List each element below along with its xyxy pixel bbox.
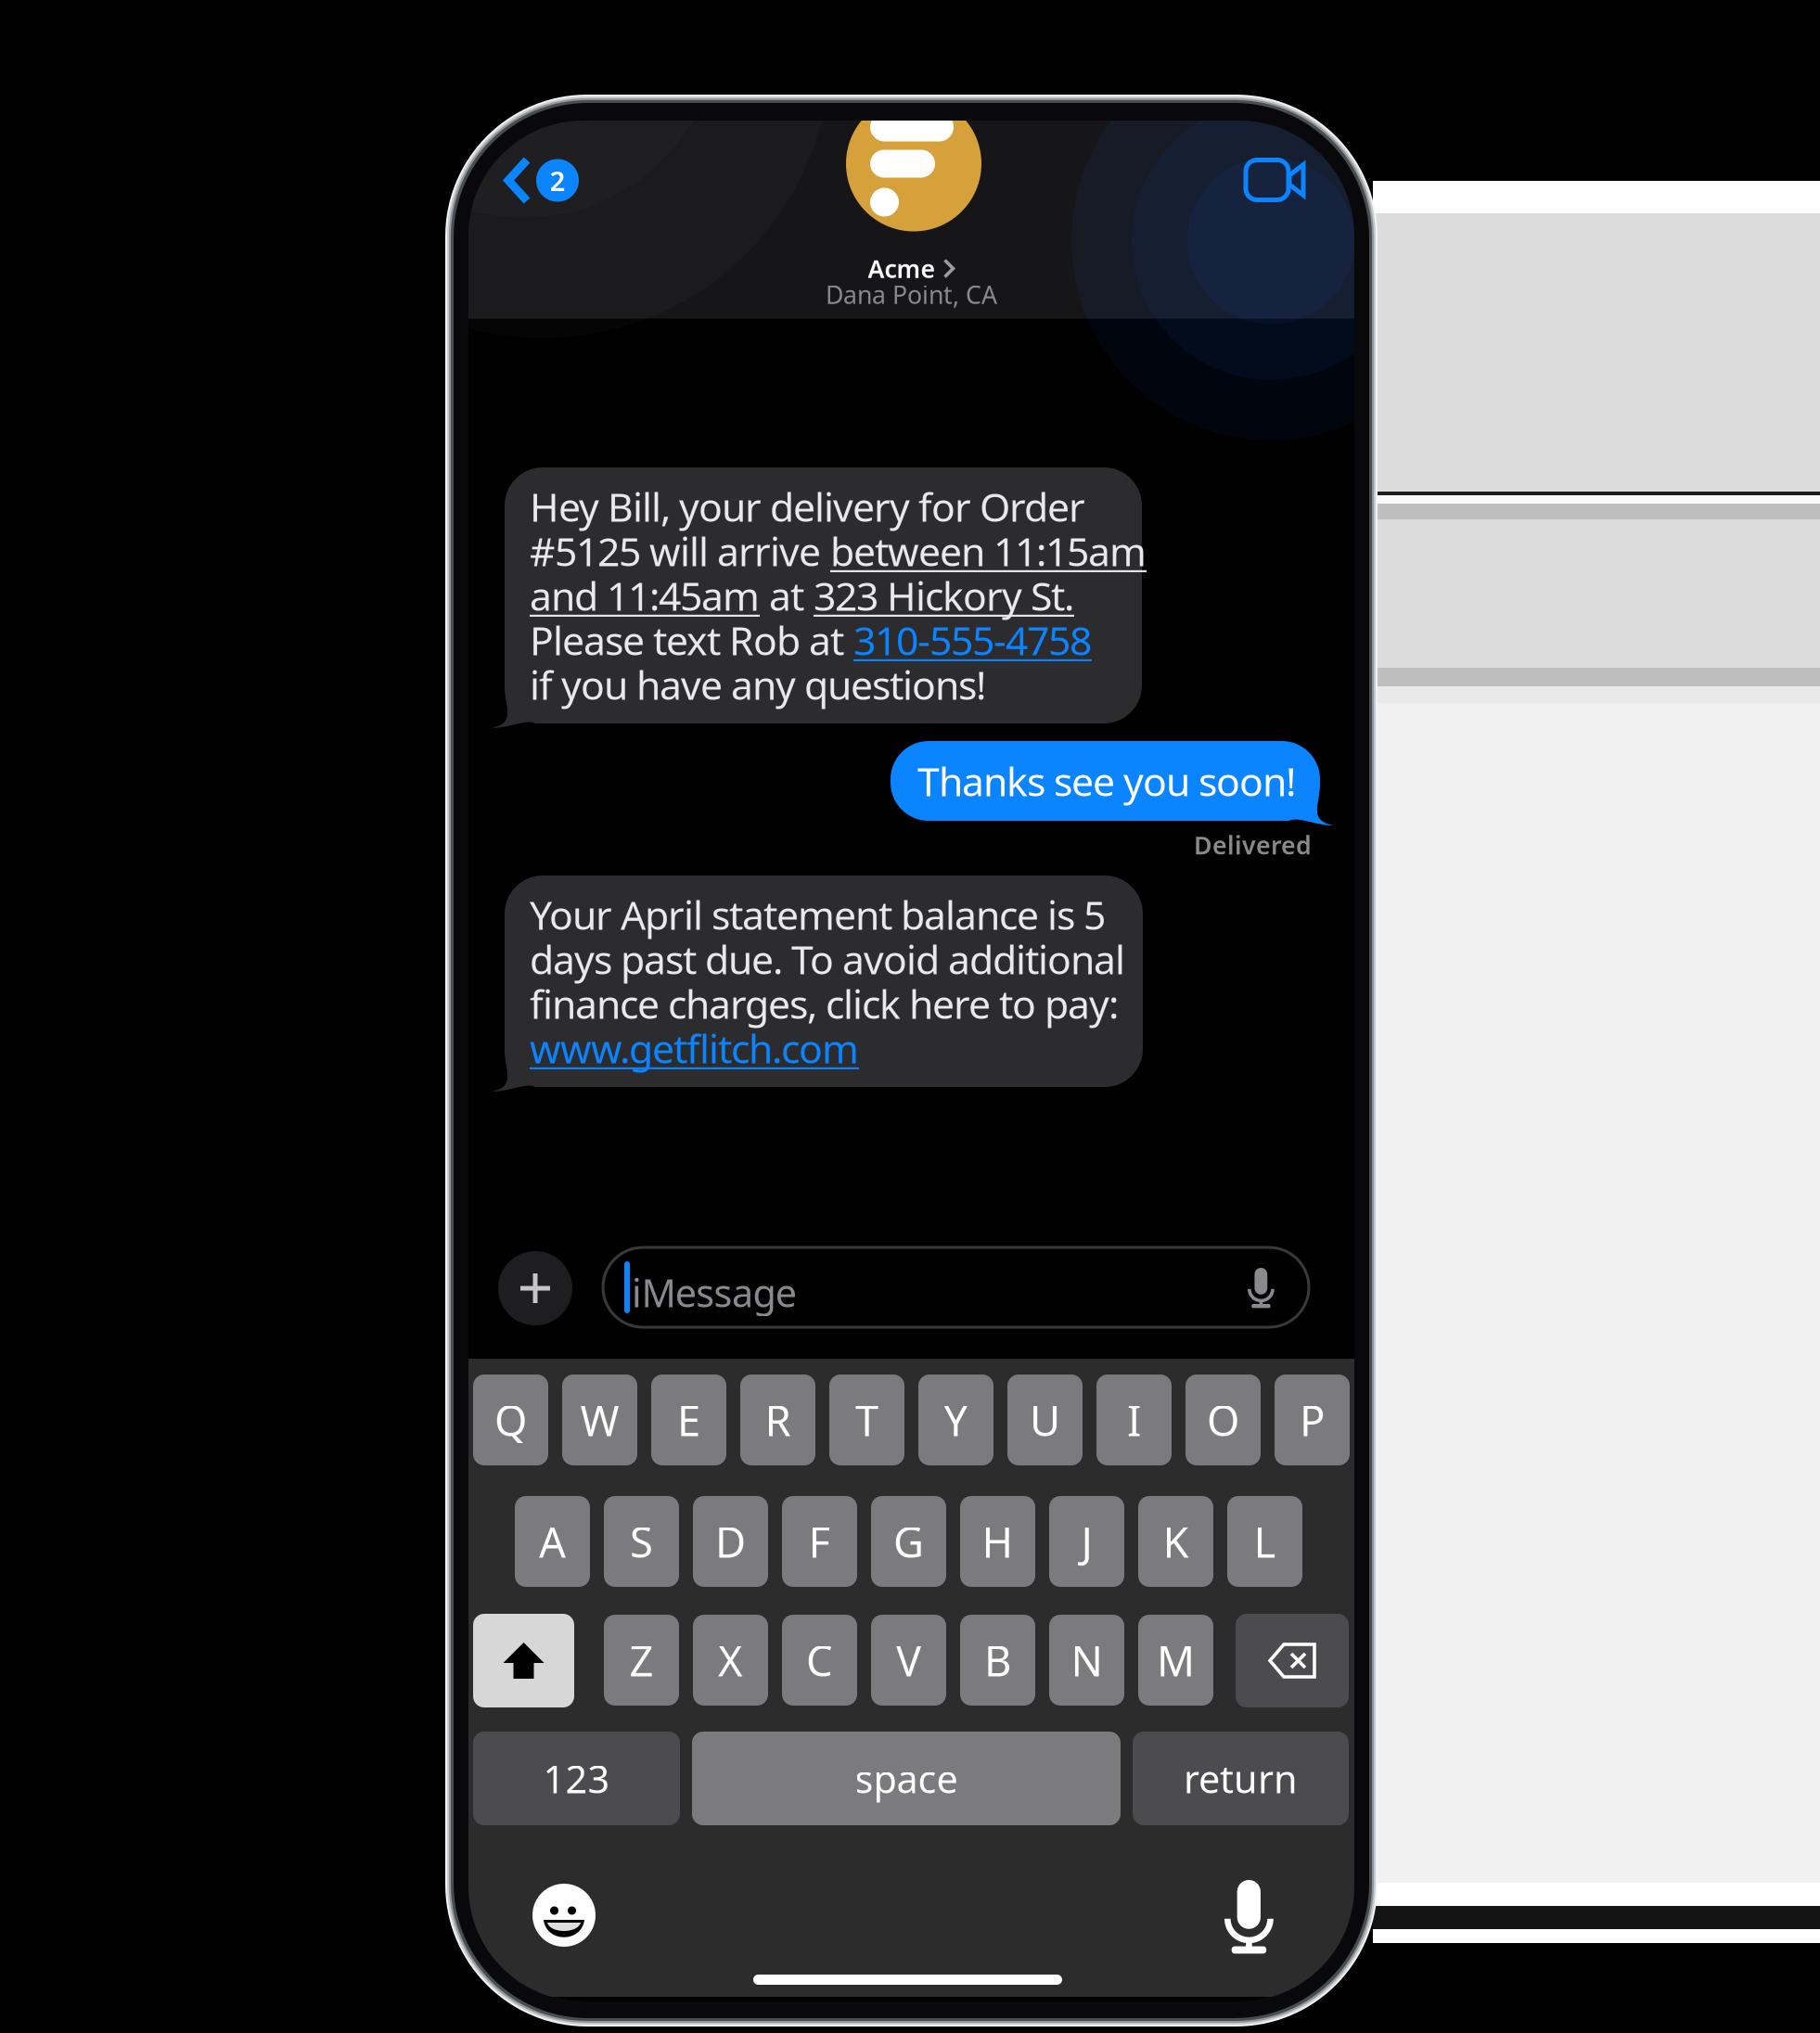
button[interactable]: G xyxy=(871,1496,946,1587)
button[interactable]: Delete xyxy=(1236,1614,1349,1707)
button[interactable]: T xyxy=(829,1375,904,1465)
button[interactable]: I xyxy=(1096,1375,1172,1465)
button[interactable]: Z xyxy=(604,1615,679,1706)
button[interactable]: Shift xyxy=(473,1614,574,1707)
staticText: A xyxy=(539,1514,566,1569)
button[interactable]: Back to conversations xyxy=(504,156,582,205)
button[interactable]: R xyxy=(740,1375,815,1465)
button[interactable]: B xyxy=(960,1615,1035,1706)
staticText: V xyxy=(896,1632,921,1688)
staticText: space xyxy=(855,1753,958,1804)
staticText: iMessage xyxy=(632,1267,797,1318)
staticText: O xyxy=(1207,1392,1239,1448)
staticText: E xyxy=(677,1392,700,1448)
button[interactable]: space xyxy=(692,1732,1121,1825)
staticText: Dana Point, CA xyxy=(826,278,997,311)
staticText: H xyxy=(982,1514,1013,1569)
staticText: Hey Bill, your delivery for Order xyxy=(530,480,1085,533)
button[interactable]: Q xyxy=(473,1375,548,1465)
button[interactable]: H xyxy=(960,1496,1035,1587)
button[interactable]: W xyxy=(562,1375,637,1465)
button[interactable]: M xyxy=(1138,1615,1213,1706)
button[interactable]: F xyxy=(782,1496,857,1587)
staticText: Y xyxy=(944,1392,968,1448)
staticText: I xyxy=(1127,1392,1141,1448)
button[interactable]: Acme contact details xyxy=(468,252,1354,285)
button[interactable]: N xyxy=(1049,1615,1124,1706)
button[interactable]: Message text field xyxy=(603,1247,1309,1327)
button[interactable]: L xyxy=(1227,1496,1302,1587)
button[interactable]: 123 xyxy=(473,1732,680,1825)
staticText: L xyxy=(1254,1514,1276,1569)
staticText: P xyxy=(1300,1392,1325,1448)
button[interactable]: O xyxy=(1186,1375,1261,1465)
staticText: C xyxy=(806,1632,833,1688)
button[interactable]: Acme profile photo xyxy=(846,96,981,231)
button[interactable]: Emoji keyboard xyxy=(532,1884,596,1947)
staticText: U xyxy=(1030,1392,1060,1448)
staticText: G xyxy=(893,1514,924,1569)
staticText: Acme xyxy=(868,252,936,285)
button[interactable]: V xyxy=(871,1615,946,1706)
staticText: return xyxy=(1184,1753,1298,1804)
staticText: M xyxy=(1157,1632,1195,1688)
button[interactable]: A xyxy=(515,1496,590,1587)
staticText: Z xyxy=(629,1632,654,1688)
staticText: 123 xyxy=(543,1753,610,1804)
staticText: D xyxy=(715,1514,746,1569)
staticText: days past due. To avoid additional xyxy=(530,933,1125,985)
staticText: www.getflitch.com xyxy=(530,1022,859,1074)
staticText: W xyxy=(580,1392,619,1448)
button[interactable]: P xyxy=(1275,1375,1350,1465)
staticText: Please text Rob at xyxy=(530,614,853,666)
staticText: finance charges, click here to pay: xyxy=(530,977,1119,1030)
staticText: if you have any questions! xyxy=(530,658,986,711)
staticText: Thanks see you soon! xyxy=(917,755,1296,807)
button[interactable]: Dictation xyxy=(1224,1880,1273,1954)
staticText: 323 Hickory St. xyxy=(814,569,1074,622)
staticText: N xyxy=(1071,1632,1102,1688)
button[interactable]: S xyxy=(604,1496,679,1587)
button[interactable]: FaceTime xyxy=(1246,160,1306,200)
staticText: R xyxy=(765,1392,791,1448)
button[interactable]: X xyxy=(693,1615,768,1706)
staticText: at xyxy=(760,569,814,622)
staticText: 310-555-4758 xyxy=(853,614,1092,666)
button[interactable]: C xyxy=(782,1615,857,1706)
staticText: S xyxy=(630,1514,653,1569)
button[interactable]: Add attachment xyxy=(498,1251,572,1325)
staticText: #5125 will arrive xyxy=(530,525,830,577)
staticText: F xyxy=(808,1514,831,1569)
button[interactable]: J xyxy=(1049,1496,1124,1587)
staticText: B xyxy=(984,1632,1011,1688)
button[interactable]: return xyxy=(1133,1732,1349,1825)
staticText: between 11:15am xyxy=(830,525,1147,577)
staticText: X xyxy=(718,1632,743,1688)
staticText: and 11:45am xyxy=(530,569,760,622)
staticText: Your April statement balance is 5 xyxy=(530,888,1106,941)
button[interactable]: Y xyxy=(918,1375,993,1465)
button[interactable]: U xyxy=(1007,1375,1083,1465)
staticText: K xyxy=(1163,1514,1189,1569)
button[interactable]: E xyxy=(651,1375,726,1465)
staticText: T xyxy=(855,1392,878,1448)
button[interactable]: K xyxy=(1138,1496,1213,1587)
staticText: Q xyxy=(494,1392,527,1448)
button[interactable]: D xyxy=(693,1496,768,1587)
staticText: 2 xyxy=(550,162,565,198)
staticText: J xyxy=(1081,1514,1092,1569)
staticText: Delivered xyxy=(1194,829,1312,861)
